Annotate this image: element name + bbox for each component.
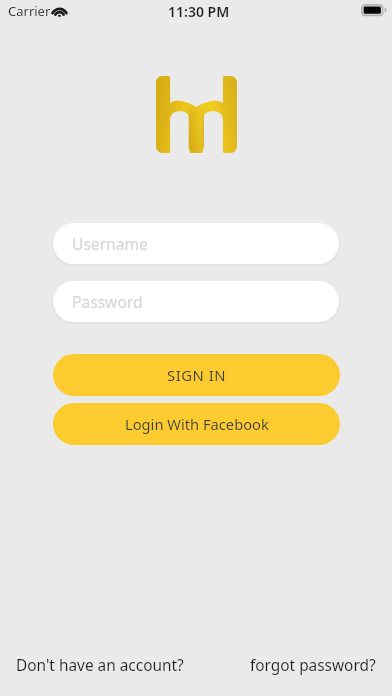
other: Battery: [361, 4, 387, 17]
staticText: SIGN IN: [167, 365, 227, 385]
button[interactable]: Don't have an account?: [14, 652, 186, 679]
other: App logo: [156, 76, 237, 153]
button[interactable]: Password: [53, 281, 339, 322]
button[interactable]: SIGN IN: [53, 354, 340, 396]
staticText: forgot password?: [250, 655, 376, 676]
button[interactable]: Login With Facebook: [53, 403, 340, 445]
button[interactable]: Username: [53, 223, 339, 264]
staticText: Carrier: [8, 2, 51, 20]
staticText: Login With Facebook: [125, 414, 269, 434]
staticText: Don't have an account?: [16, 655, 184, 676]
button[interactable]: forgot password?: [248, 652, 378, 679]
staticText: Username: [72, 233, 148, 254]
staticText: 11:30 PM: [168, 2, 230, 21]
staticText: Password: [72, 291, 143, 312]
other: Wi-Fi: [51, 4, 68, 17]
